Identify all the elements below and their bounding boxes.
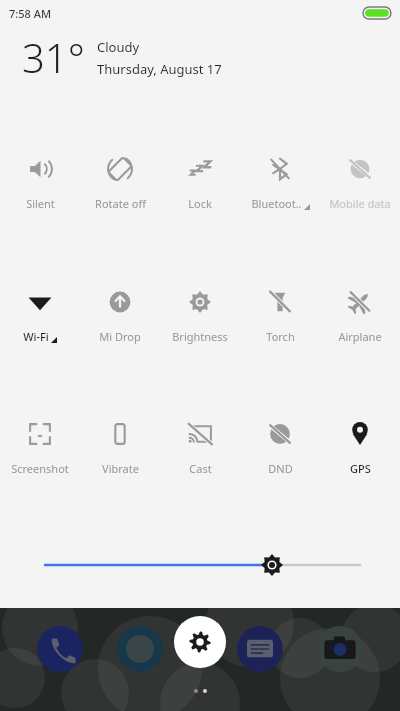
staticText: Mi Drop	[99, 329, 141, 344]
staticText: Lock	[188, 196, 212, 211]
button[interactable]: GPS	[320, 417, 400, 478]
staticText: 31°	[22, 30, 85, 84]
button[interactable]: Bluetoot..	[240, 152, 320, 213]
button[interactable]: Silent	[0, 152, 80, 213]
button[interactable]: Settings	[174, 616, 226, 668]
button[interactable]: Browser	[114, 623, 166, 675]
button[interactable]: Mobile data	[320, 152, 400, 213]
staticText: Airplane	[338, 329, 382, 344]
staticText: Vibrate	[102, 461, 139, 476]
button[interactable]: Lock	[160, 152, 240, 213]
button[interactable]: DND	[240, 417, 320, 478]
staticText: Thursday, August 17	[97, 60, 222, 78]
staticText: DND	[268, 461, 293, 476]
staticText: Rotate off	[95, 196, 146, 211]
button[interactable]: Brightness	[160, 285, 240, 346]
staticText: Bluetoot..	[251, 196, 302, 211]
staticText: Mobile data	[329, 196, 391, 211]
button[interactable]: Torch	[240, 285, 320, 346]
staticText: 7:58 AM	[9, 6, 52, 21]
button[interactable]: Screenshot	[0, 417, 80, 478]
button[interactable]: Wi-Fi	[0, 285, 80, 346]
button[interactable]: Cast	[160, 417, 240, 478]
button[interactable]: Mi Drop	[80, 285, 160, 346]
button[interactable]: Brightness slider	[0, 545, 400, 585]
staticText: Torch	[266, 329, 295, 344]
button[interactable]: Airplane	[320, 285, 400, 346]
staticText: Screenshot	[11, 461, 69, 476]
staticText: Silent	[26, 196, 55, 211]
staticText: Wi-Fi	[23, 329, 49, 344]
button[interactable]: Messaging	[234, 623, 286, 675]
button[interactable]: Phone	[34, 623, 86, 675]
button[interactable]: Rotate off	[80, 152, 160, 213]
button[interactable]: Camera	[314, 623, 366, 675]
staticText: GPS	[350, 461, 371, 476]
staticText: Cast	[189, 461, 212, 476]
staticText: Brightness	[172, 329, 228, 344]
button[interactable]: Vibrate	[80, 417, 160, 478]
staticText: Cloudy	[97, 38, 140, 56]
